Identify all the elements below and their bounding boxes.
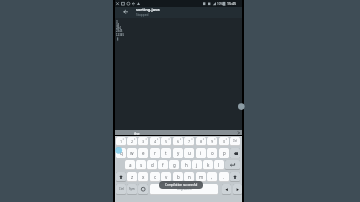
staticText: 1 [120,139,123,144]
button[interactable] [115,130,242,135]
button[interactable] [222,184,231,195]
staticText: Stopped [136,13,149,17]
staticText: w [130,150,134,156]
button[interactable]: r [150,148,160,158]
button[interactable]: l [214,160,224,170]
button[interactable]: f [158,160,168,170]
button[interactable]: Ctrl [116,184,126,195]
button[interactable]: 0 [219,137,229,146]
staticText: 7 [188,139,191,144]
staticText: Compilation successful [165,183,198,187]
button[interactable]: y [173,148,183,158]
staticText: 10% [217,2,224,6]
button[interactable]: s [136,160,146,170]
staticText: 12345 [116,33,125,37]
staticText: 2345 [116,29,123,33]
staticText: 284 [116,26,121,30]
button[interactable]: b [173,172,183,182]
staticText: 3 [116,20,118,24]
staticText: u [188,150,191,156]
staticText: x [142,174,145,180]
button[interactable]: n [184,172,194,182]
button[interactable]: . [219,172,229,182]
button[interactable]: 3 [138,137,148,146]
button[interactable] [230,148,240,158]
button[interactable]: 6 [173,137,183,146]
staticText: 5 [165,139,168,144]
button[interactable]: a [125,160,135,170]
button[interactable] [116,172,126,182]
button[interactable]: k [203,160,213,170]
staticText: s [140,162,143,168]
staticText: . [223,174,225,180]
button[interactable] [225,160,240,170]
staticText: Ungesehen [177,187,192,191]
staticText: Ctrl [119,187,124,191]
button[interactable]: , [207,172,217,182]
button[interactable]: j [192,160,202,170]
button[interactable]: 1 [116,137,126,146]
staticText: a [129,162,132,168]
staticText: , [211,174,213,180]
staticText: 3 [142,139,145,144]
button[interactable]: g [169,160,179,170]
staticText: h [185,162,188,168]
button[interactable]: i [196,148,206,158]
staticText: k [207,162,210,168]
staticText: 4 [154,139,157,144]
button[interactable]: m [196,172,206,182]
button[interactable]: t [161,148,171,158]
button[interactable]: v [161,172,171,182]
staticText: 9 [211,139,214,144]
staticText: Del [233,139,238,143]
button[interactable]: Ungesehen [150,184,218,195]
button[interactable]: e [138,148,148,158]
staticText: r [154,150,156,156]
staticText: q [120,150,123,156]
button[interactable]: Del [230,137,240,146]
staticText: o [211,150,214,156]
button[interactable]: 2 [127,137,137,146]
button[interactable]: h [181,160,191,170]
staticText: sorting.java [136,7,160,12]
staticText: 6 [177,139,180,144]
button[interactable]: c [150,172,160,182]
staticText: 15:45 [227,1,236,6]
staticText: 2 [131,139,134,144]
button[interactable] [233,184,242,195]
button[interactable]: Sym [127,184,137,195]
button[interactable]: u [184,148,194,158]
staticText: g [173,162,176,168]
button[interactable] [230,172,240,182]
staticText: Sym [129,187,135,191]
button[interactable]: x [138,172,148,182]
staticText: 0 [223,139,226,144]
staticText: l [218,162,220,168]
staticText: i [200,150,202,156]
staticText: e [142,150,145,156]
button[interactable]: d [147,160,157,170]
button[interactable]: w [127,148,137,158]
button[interactable]: q [116,148,126,158]
button[interactable] [121,8,130,16]
staticText: z [131,174,134,180]
button[interactable]: 8 [196,137,206,146]
button[interactable]: 9 [207,137,217,146]
button[interactable]: z [127,172,137,182]
staticText: n [188,174,191,180]
staticText: m [199,174,204,180]
button[interactable]: 7 [184,137,194,146]
staticText: y [177,150,180,156]
staticText: d [151,162,154,168]
staticText: the [134,131,140,136]
staticText: 8 [200,139,203,144]
button[interactable]: o [207,148,217,158]
button[interactable]: 5 [161,137,171,146]
button[interactable] [138,184,148,195]
button[interactable]: 4 [150,137,160,146]
staticText: f [162,162,164,168]
staticText: b [177,174,180,180]
button[interactable]: p [219,148,229,158]
staticText: t [165,150,167,156]
staticText: 34 [116,23,120,27]
